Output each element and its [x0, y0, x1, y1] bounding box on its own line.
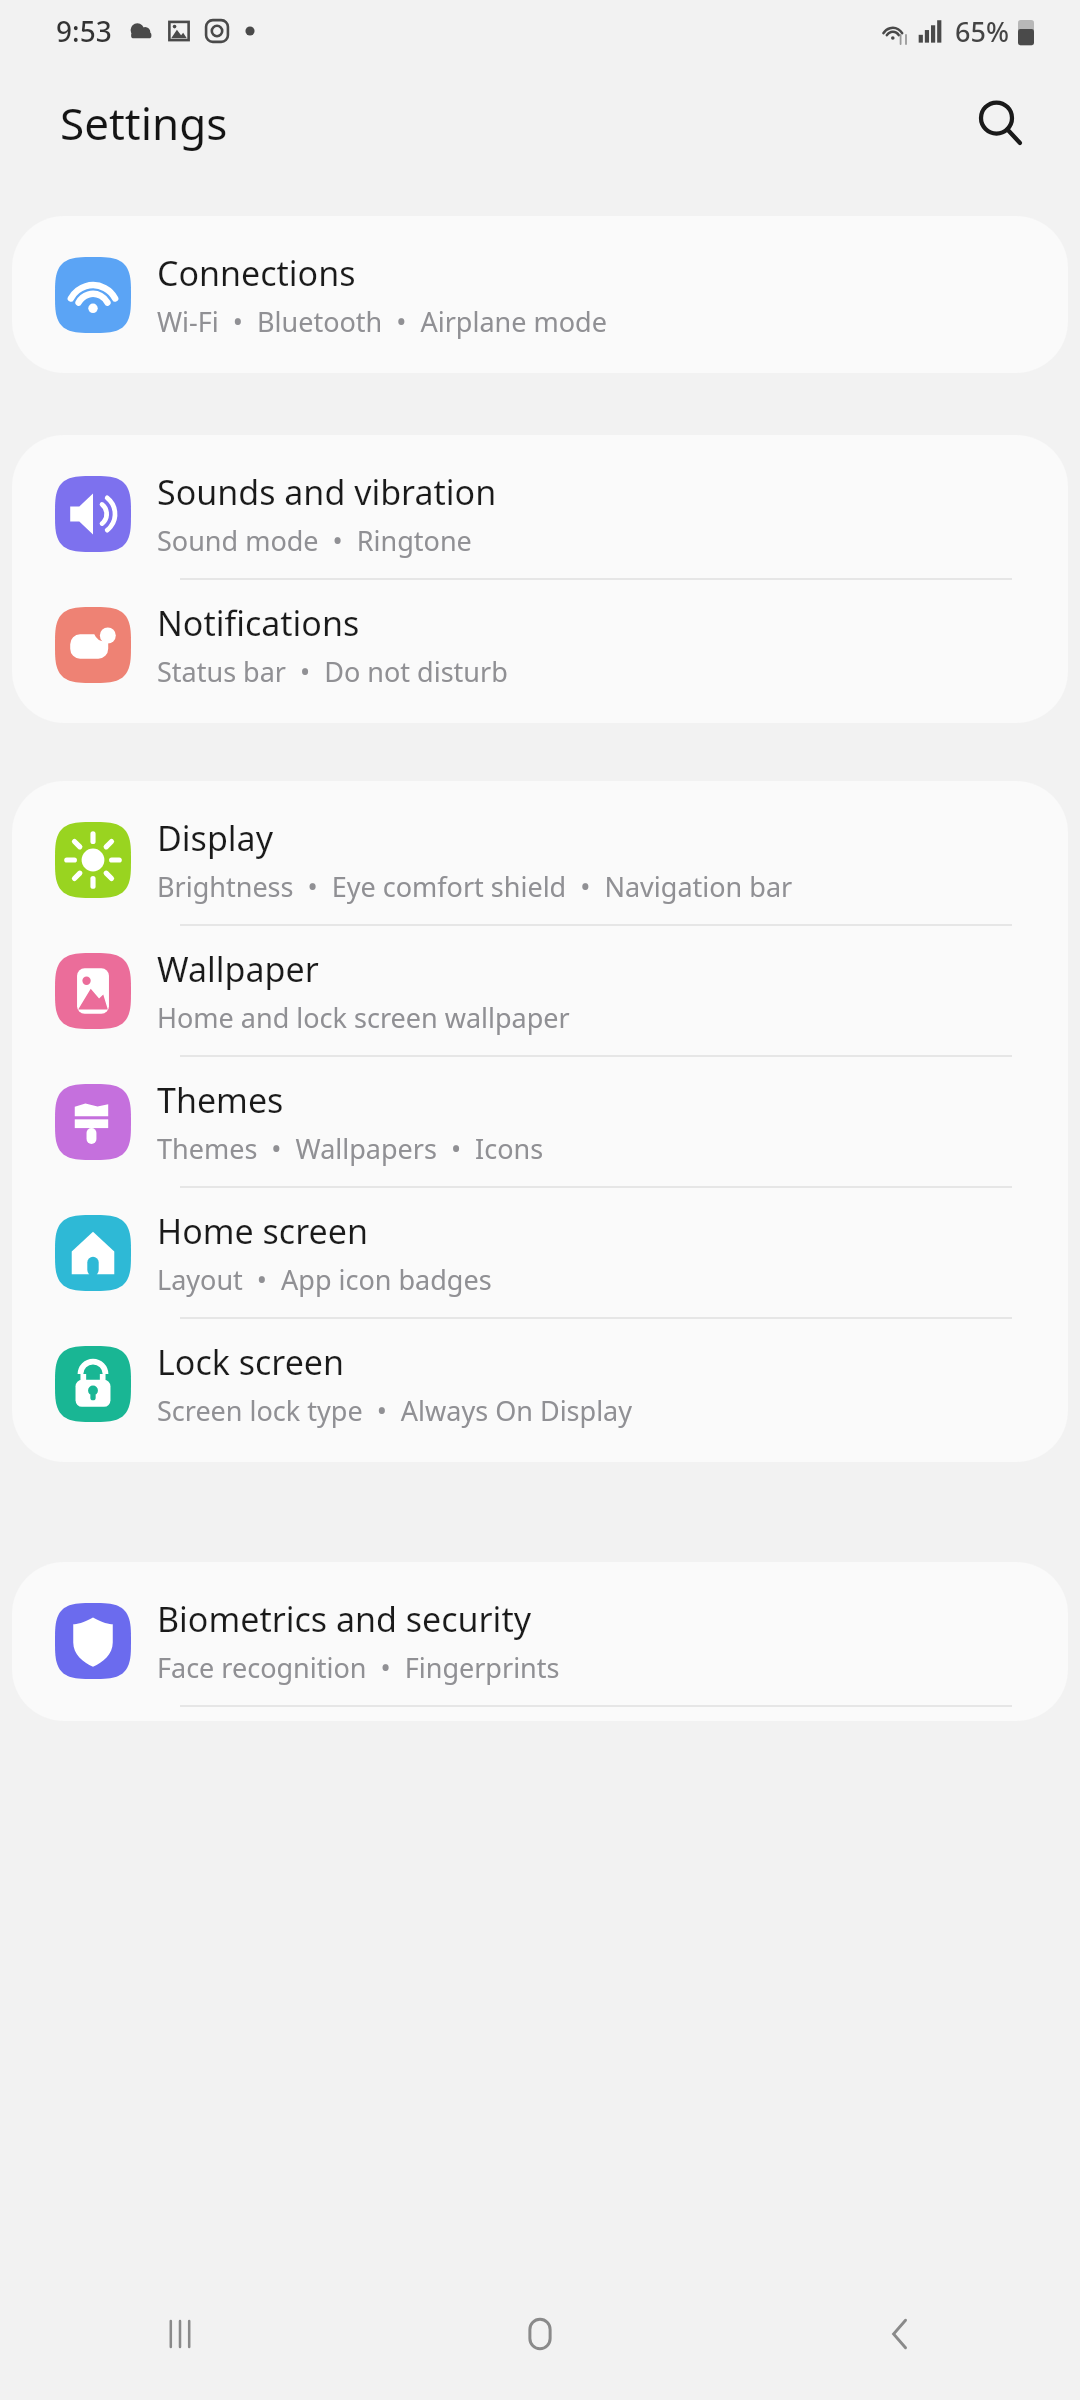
button[interactable]: Connections	[12, 230, 1068, 359]
button[interactable]: Back	[720, 2268, 1080, 2400]
staticText: Home and lock screen wallpaper	[157, 999, 570, 1036]
staticText: 9:53	[56, 12, 112, 50]
staticText: 65%	[955, 13, 1009, 50]
staticText: Brightness • Eye comfort shield • Naviga…	[157, 868, 793, 905]
staticText: Notifications	[157, 600, 360, 646]
staticText: Wi-Fi • Bluetooth • Airplane mode	[157, 303, 607, 340]
staticText: Wallpaper	[157, 946, 319, 992]
button[interactable]: Wallpaper	[12, 926, 1068, 1057]
button[interactable]: Sounds and vibration	[12, 449, 1068, 580]
staticText: Settings	[60, 93, 228, 153]
button[interactable]: Biometrics and security	[12, 1576, 1068, 1707]
staticText: Themes • Wallpapers • Icons	[157, 1130, 544, 1167]
staticText: Connections	[157, 250, 356, 296]
button[interactable]: Home	[360, 2268, 720, 2400]
staticText: Themes	[157, 1077, 284, 1123]
staticText: Face recognition • Fingerprints	[157, 1649, 560, 1686]
staticText: Biometrics and security	[157, 1596, 531, 1642]
button[interactable]: Themes	[12, 1057, 1068, 1188]
button[interactable]: Display	[12, 795, 1068, 926]
staticText: Lock screen	[157, 1339, 345, 1385]
button[interactable]: Search	[958, 81, 1042, 165]
staticText: Home screen	[157, 1208, 368, 1254]
staticText: Sounds and vibration	[157, 469, 497, 515]
button[interactable]: Notifications	[12, 580, 1068, 709]
button[interactable]: Lock screen	[12, 1319, 1068, 1448]
staticText: Sound mode • Ringtone	[157, 522, 472, 559]
button[interactable]: Recents	[0, 2268, 360, 2400]
staticText: Screen lock type • Always On Display	[157, 1392, 633, 1429]
button[interactable]: Home screen	[12, 1188, 1068, 1319]
staticText: Display	[157, 815, 273, 861]
staticText: Layout • App icon badges	[157, 1261, 492, 1298]
staticText: Status bar • Do not disturb	[157, 653, 508, 690]
